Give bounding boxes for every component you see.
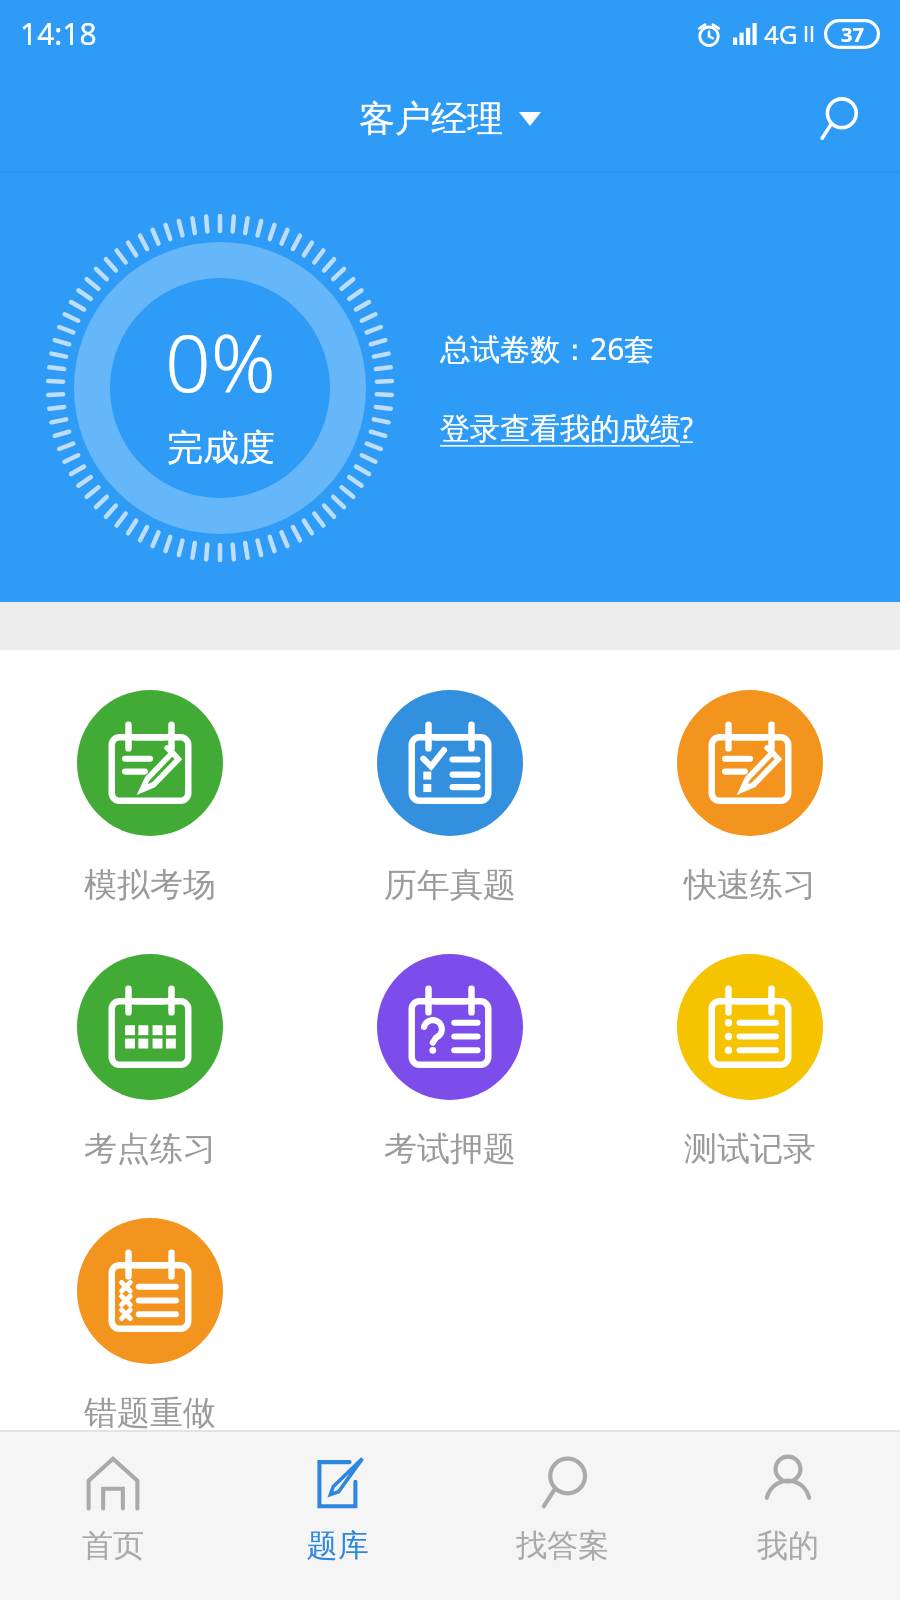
button[interactable]: 考试押题 <box>300 954 600 1170</box>
staticText: 测试记录 <box>684 1128 816 1170</box>
button[interactable]: Question bank <box>225 1432 450 1600</box>
button[interactable]: 客户经理 <box>351 88 549 149</box>
button[interactable]: Home <box>0 1432 225 1600</box>
staticText: 4G <box>764 16 798 51</box>
staticText: 我的 <box>757 1526 819 1565</box>
button[interactable]: Find answers <box>450 1432 675 1600</box>
staticText: 找答案 <box>516 1526 609 1565</box>
button[interactable]: Search <box>802 83 874 155</box>
staticText: 37 <box>841 21 864 48</box>
staticText: 考点练习 <box>84 1128 216 1170</box>
button[interactable]: 考点练习 <box>0 954 300 1170</box>
staticText: 0% <box>165 306 276 415</box>
button[interactable]: 历年真题 <box>300 690 600 906</box>
button[interactable]: 模拟考场 <box>0 690 300 906</box>
staticText: 14:18 <box>20 13 97 54</box>
button[interactable]: Profile <box>675 1432 900 1600</box>
staticText: 模拟考场 <box>84 864 216 906</box>
staticText: 考试押题 <box>384 1128 516 1170</box>
staticText: 快速练习 <box>684 864 816 906</box>
staticText: 客户经理 <box>359 96 503 141</box>
button[interactable]: 测试记录 <box>600 954 900 1170</box>
button[interactable]: 登录查看我的成绩? <box>440 407 694 448</box>
staticText: 总试卷数：26套 <box>440 328 655 369</box>
staticText: 历年真题 <box>384 864 516 906</box>
staticText: 登录查看我的成绩? <box>440 407 694 448</box>
button[interactable]: 错题重做 <box>0 1218 300 1434</box>
staticText: 题库 <box>307 1526 369 1565</box>
button[interactable]: 快速练习 <box>600 690 900 906</box>
staticText: 完成度 <box>167 425 275 470</box>
staticText: 首页 <box>82 1526 144 1565</box>
staticText: 错题重做 <box>84 1392 216 1434</box>
